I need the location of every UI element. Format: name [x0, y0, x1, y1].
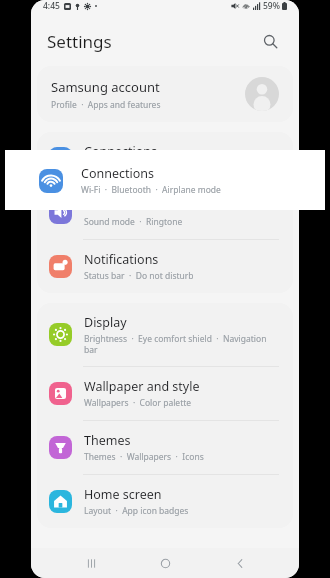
staticText: Sounds and vibration — [84, 197, 209, 214]
button[interactable]: Back — [225, 548, 255, 578]
button[interactable]: Recents — [76, 548, 106, 578]
button[interactable]: Sounds and vibration — [37, 186, 293, 239]
staticText: Wi-Fi · Bluetooth · Airplane mode — [84, 162, 224, 174]
staticText: Connections — [84, 143, 157, 160]
staticText: 4:45 — [43, 0, 60, 12]
staticText: Display — [84, 314, 127, 331]
button[interactable]: Wallpaper and style — [37, 367, 293, 420]
button[interactable]: Themes — [37, 421, 293, 474]
staticText: Layout · App icon badges — [84, 505, 189, 517]
button[interactable]: Samsung account — [37, 66, 293, 122]
staticText: 59% — [263, 0, 280, 12]
staticText: Settings — [47, 30, 112, 53]
button[interactable]: Connections — [37, 132, 293, 185]
staticText: Wallpapers · Color palette — [84, 397, 192, 409]
staticText: Wi-Fi · Bluetooth · Airplane mode — [81, 184, 221, 196]
staticText: Connections — [81, 165, 154, 182]
button[interactable]: Notifications — [37, 240, 293, 293]
staticText: Wallpaper and style — [84, 378, 200, 395]
staticText: Themes · Wallpapers · Icons — [84, 451, 204, 463]
staticText: Sound mode · Ringtone — [84, 216, 183, 228]
button[interactable]: Home — [150, 548, 180, 578]
button[interactable]: Home screen — [37, 475, 293, 528]
staticText: Home screen — [84, 486, 162, 503]
staticText: Samsung account — [51, 78, 160, 96]
staticText: Status bar · Do not disturb — [84, 270, 194, 282]
staticText: Profile · Apps and features — [51, 99, 161, 111]
staticText: Themes — [84, 432, 131, 449]
button[interactable]: Connections — [5, 150, 325, 210]
button[interactable]: Search — [257, 28, 283, 54]
staticText: Brightness · Eye comfort shield · Naviga… — [84, 333, 279, 355]
button[interactable]: Display — [37, 303, 293, 366]
staticText: Notifications — [84, 251, 159, 268]
